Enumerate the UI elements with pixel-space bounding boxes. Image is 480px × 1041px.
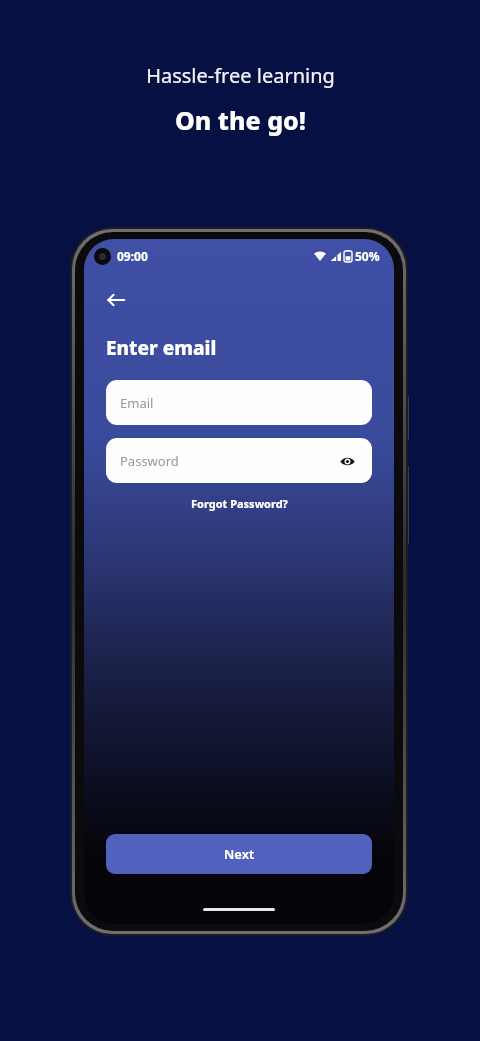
- staticText: Next: [224, 845, 255, 863]
- staticText: 50%: [355, 248, 380, 264]
- staticText: Forgot Password?: [191, 496, 288, 511]
- button[interactable]: Email: [106, 380, 372, 425]
- button[interactable]: Forgot Password?: [106, 496, 372, 511]
- button[interactable]: Next: [106, 834, 372, 874]
- staticText: Email: [120, 394, 154, 412]
- staticText: Hassle-free learning: [146, 62, 335, 89]
- button[interactable]: Show password: [336, 450, 358, 472]
- button[interactable]: Back: [106, 283, 140, 317]
- staticText: 09:00: [117, 248, 148, 264]
- staticText: On the go!: [175, 103, 306, 137]
- staticText: Enter email: [106, 335, 217, 361]
- button[interactable]: Password: [106, 438, 372, 483]
- staticText: Password: [120, 452, 179, 470]
